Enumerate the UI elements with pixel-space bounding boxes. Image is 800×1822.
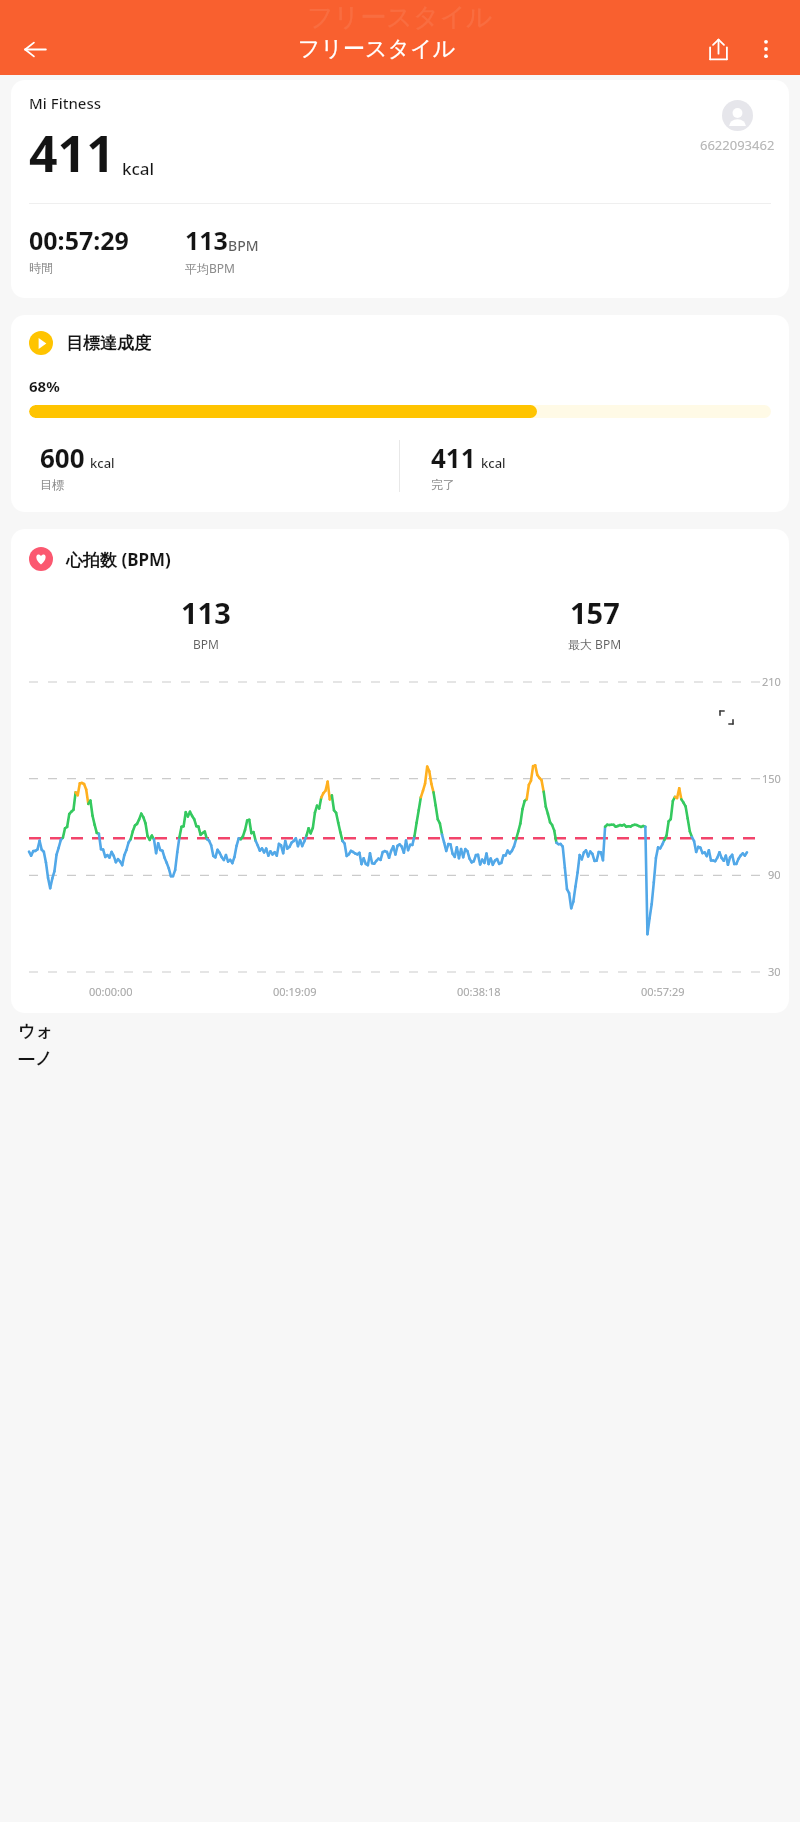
staticText: ウォ (18, 1021, 53, 1042)
staticText: 完了 (431, 477, 455, 492)
staticText: フリースタイル (298, 35, 456, 63)
staticText: 411 (431, 440, 476, 475)
staticText: 113 (181, 593, 231, 632)
staticText: 00:57:29 (29, 223, 129, 257)
staticText: kcal (481, 454, 506, 472)
staticText: 目標達成度 (66, 333, 151, 354)
button[interactable]: Back (11, 25, 59, 73)
staticText: kcal (90, 454, 115, 472)
staticText: 90 (768, 867, 781, 882)
staticText: Mi Fitness (29, 93, 102, 113)
staticText: 210 (762, 674, 781, 689)
staticText: 最大 BPM (568, 636, 622, 652)
button[interactable]: 心拍数 (BPM) (11, 529, 789, 1013)
staticText: 00:00:00 (89, 984, 133, 999)
button[interactable]: More options (742, 25, 790, 73)
staticText: フリースタイル (307, 1, 493, 34)
staticText: BPM (228, 236, 259, 255)
button[interactable]: Expand chart (709, 700, 743, 734)
staticText: 平均BPM (185, 260, 235, 276)
staticText: 600 (40, 440, 85, 475)
staticText: 68% (29, 376, 60, 396)
staticText: 00:19:09 (273, 984, 317, 999)
staticText: 150 (762, 771, 781, 786)
staticText: 30 (768, 964, 781, 979)
button[interactable]: 目標達成度 (11, 315, 789, 512)
button[interactable]: Share (694, 25, 742, 73)
button[interactable]: Mi Fitness (11, 80, 789, 298)
staticText: 6622093462 (700, 136, 775, 154)
staticText: 心拍数 (BPM) (66, 548, 171, 571)
staticText: 113 (185, 223, 228, 257)
staticText: 411 (29, 119, 115, 187)
staticText: 157 (570, 593, 620, 632)
staticText: 00:57:29 (641, 984, 685, 999)
staticText: 00:38:18 (457, 984, 501, 999)
staticText: 目標 (40, 477, 64, 492)
staticText: —ノ (18, 1046, 53, 1069)
staticText: 時間 (29, 260, 53, 275)
staticText: BPM (193, 636, 219, 652)
staticText: kcal (122, 157, 155, 180)
